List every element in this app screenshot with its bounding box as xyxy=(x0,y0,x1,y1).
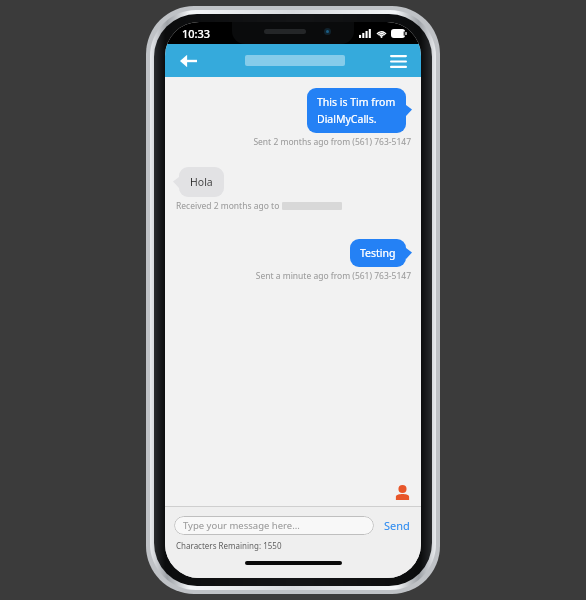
staticText: Received 2 months ago to xyxy=(176,200,282,212)
staticText: DialMyCalls. xyxy=(317,112,377,126)
button[interactable]: Send xyxy=(374,515,412,536)
staticText: Characters Remaining: 1550 xyxy=(176,540,282,551)
button[interactable]: This is Tim from xyxy=(307,88,406,133)
staticText: This is Tim from xyxy=(317,95,396,109)
staticText: Sent 2 months ago from (561) 763-5147 xyxy=(253,136,411,148)
button[interactable]: Type your message here... xyxy=(174,516,374,535)
staticText: Send xyxy=(384,518,410,533)
staticText: Sent a minute ago from (561) 763-5147 xyxy=(255,270,411,282)
staticText: Hola xyxy=(190,175,213,189)
button[interactable]: Menu xyxy=(383,46,413,76)
button[interactable]: Hola xyxy=(179,167,224,197)
staticText: Testing xyxy=(360,246,396,260)
staticText: 10:33 xyxy=(182,26,211,41)
button[interactable]: Back xyxy=(173,46,203,76)
staticText: Type your message here... xyxy=(183,519,300,532)
button[interactable]: Contact xyxy=(391,481,413,503)
button[interactable]: Testing xyxy=(350,239,406,267)
